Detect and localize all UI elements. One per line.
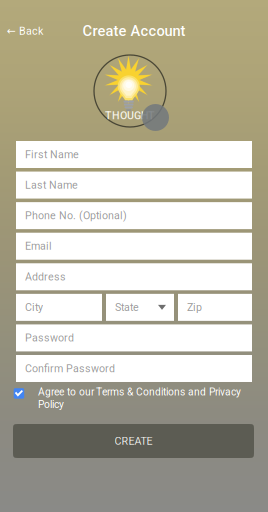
button[interactable]: CREATE — [13, 424, 254, 458]
button[interactable]: Agree to our Terms & Conditions and Priv… — [14, 386, 254, 412]
button[interactable]: Email — [16, 233, 252, 260]
staticText: Agree to our Terms & Conditions and Priv… — [38, 386, 241, 398]
staticText: Email — [25, 240, 52, 252]
button[interactable]: First Name — [16, 141, 252, 168]
staticText: CREATE — [114, 435, 152, 447]
staticText: Policy — [38, 398, 64, 410]
button[interactable]: ← Back — [0, 13, 52, 49]
staticText: Phone No. (Optional) — [25, 209, 127, 222]
button[interactable]: Address — [16, 263, 252, 290]
button[interactable]: Password — [16, 324, 252, 351]
staticText: ← Back — [7, 25, 43, 37]
staticText: Address — [25, 270, 66, 283]
staticText: Password — [25, 332, 74, 344]
staticText: State — [115, 301, 139, 314]
button[interactable]: State — [106, 294, 174, 321]
staticText: THOUGHT — [105, 109, 155, 122]
staticText: First Name — [25, 148, 79, 161]
staticText: Last Name — [25, 179, 78, 191]
button[interactable]: City — [16, 294, 102, 321]
staticText: Confirm Password — [25, 362, 115, 375]
button[interactable]: Phone No. (Optional) — [16, 202, 252, 229]
staticText: City — [25, 301, 43, 314]
button[interactable]: Last Name — [16, 172, 252, 199]
staticText: Zip — [187, 301, 202, 314]
staticText: Create Account — [82, 22, 185, 40]
button[interactable]: Zip — [178, 294, 252, 321]
button[interactable]: Confirm Password — [16, 355, 252, 382]
